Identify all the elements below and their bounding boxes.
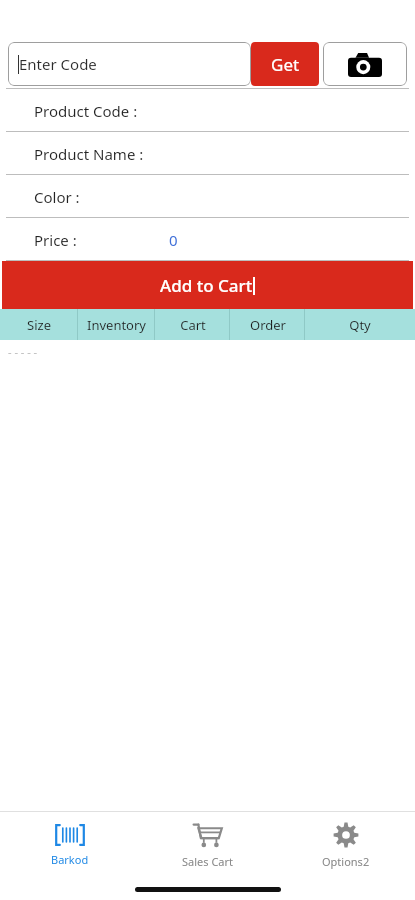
- staticText: Add to Cart: [160, 274, 253, 297]
- button[interactable]: Size: [0, 309, 78, 340]
- staticText: Product Name :: [34, 144, 144, 164]
- button[interactable]: Qty: [305, 309, 415, 340]
- staticText: 0: [169, 230, 178, 250]
- staticText: Cart: [180, 316, 206, 334]
- staticText: Color :: [34, 187, 80, 207]
- staticText: Enter Code: [19, 54, 97, 74]
- button[interactable]: Product Code :: [0, 89, 415, 132]
- staticText: Sales Cart: [182, 854, 234, 869]
- button[interactable]: Order: [230, 309, 305, 340]
- staticText: Inventory: [87, 316, 146, 334]
- button[interactable]: Add to Cart: [2, 261, 413, 309]
- staticText: Qty: [349, 316, 371, 334]
- staticText: Get: [271, 53, 300, 76]
- staticText: - - - - -: [8, 344, 38, 359]
- staticText: Order: [250, 316, 286, 334]
- staticText: Price :: [34, 230, 77, 250]
- button[interactable]: Cart: [155, 309, 230, 340]
- button[interactable]: Inventory: [78, 309, 155, 340]
- button[interactable]: Color :: [0, 175, 415, 218]
- button[interactable]: Sales Cart: [139, 812, 277, 878]
- staticText: Options2: [322, 854, 370, 869]
- button[interactable]: Enter Code: [8, 42, 251, 86]
- staticText: Barkod: [51, 852, 89, 867]
- staticText: Product Code :: [34, 101, 138, 121]
- button[interactable]: Product Name :: [0, 132, 415, 175]
- button[interactable]: Get: [251, 42, 319, 86]
- button[interactable]: Barkod: [0, 812, 139, 878]
- button[interactable]: Options2: [277, 812, 415, 878]
- button[interactable]: Price :: [0, 218, 415, 261]
- staticText: Size: [27, 316, 51, 334]
- button[interactable]: Scan with camera: [323, 42, 407, 86]
